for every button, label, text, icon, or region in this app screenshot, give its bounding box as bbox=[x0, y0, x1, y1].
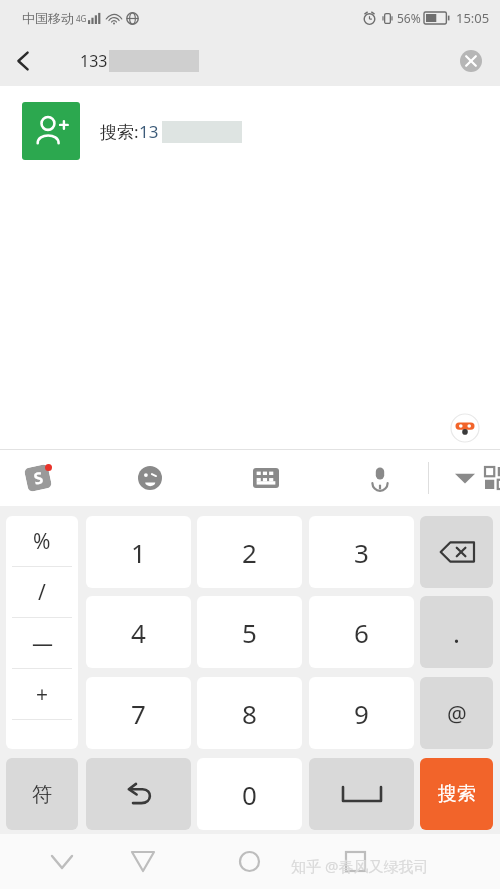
staticText: 6 bbox=[354, 615, 369, 650]
button[interactable]: . bbox=[420, 596, 493, 668]
staticText: 8 bbox=[242, 696, 257, 731]
button[interactable]: 7 bbox=[86, 677, 191, 749]
button[interactable]: Sogou input bbox=[16, 456, 60, 500]
button[interactable]: 符 bbox=[6, 758, 78, 830]
staticText: S bbox=[32, 466, 45, 490]
button[interactable]: + bbox=[6, 669, 78, 719]
staticText: — bbox=[32, 629, 53, 658]
button[interactable]: 2 bbox=[197, 516, 302, 588]
button[interactable]: Hide keyboard bbox=[443, 450, 487, 506]
staticText: 15:05 bbox=[456, 9, 490, 27]
staticText: 133 bbox=[80, 50, 108, 72]
staticText: 中国移动 bbox=[22, 10, 74, 26]
button[interactable]: 3 bbox=[309, 516, 414, 588]
button[interactable]: 6 bbox=[309, 596, 414, 668]
staticText: 9 bbox=[354, 696, 369, 731]
button[interactable]: Keyboard bbox=[244, 456, 288, 500]
staticText: 56% bbox=[397, 10, 421, 26]
staticText: 符 bbox=[32, 782, 52, 807]
button[interactable]: 1 bbox=[86, 516, 191, 588]
staticText: 5 bbox=[242, 615, 257, 650]
staticText: @ bbox=[447, 698, 467, 728]
button[interactable]: 5 bbox=[197, 596, 302, 668]
button[interactable]: Voice input bbox=[358, 456, 402, 500]
button[interactable]: 搜索: bbox=[0, 86, 500, 176]
button[interactable]: Emoji bbox=[128, 456, 172, 500]
button[interactable]: 4 bbox=[86, 596, 191, 668]
button[interactable]: Apps bbox=[474, 456, 500, 500]
staticText: 搜索: bbox=[100, 120, 139, 143]
button[interactable]: 0 bbox=[197, 758, 302, 830]
button[interactable]: Hide keyboard bbox=[40, 834, 84, 889]
staticText: 1 bbox=[131, 535, 146, 570]
button[interactable]: 9 bbox=[309, 677, 414, 749]
staticText: 2 bbox=[242, 535, 257, 570]
button[interactable]: Clear bbox=[454, 44, 488, 78]
staticText: 7 bbox=[131, 696, 146, 731]
button[interactable]: / bbox=[6, 567, 78, 617]
staticText: 3 bbox=[354, 535, 369, 570]
button[interactable]: Back bbox=[0, 37, 48, 85]
staticText: % bbox=[33, 527, 51, 556]
button[interactable]: @ bbox=[420, 677, 493, 749]
staticText: + bbox=[36, 680, 49, 709]
button[interactable]: Home bbox=[227, 834, 271, 889]
button[interactable]: Back bbox=[121, 834, 165, 889]
button[interactable]: Mascot bbox=[450, 413, 480, 443]
button[interactable]: % bbox=[6, 516, 78, 566]
staticText: 知乎 @春风又绿我司 bbox=[291, 856, 429, 876]
staticText: 搜索 bbox=[438, 782, 476, 806]
staticText: 13 bbox=[139, 120, 159, 143]
button[interactable] bbox=[309, 758, 414, 830]
staticText: . bbox=[453, 615, 460, 650]
staticText: 4 bbox=[131, 615, 146, 650]
staticText: 0 bbox=[242, 777, 257, 812]
button[interactable]: Backspace bbox=[420, 516, 493, 588]
staticText: / bbox=[38, 578, 46, 607]
button[interactable] bbox=[86, 758, 191, 830]
button[interactable]: 搜索 bbox=[420, 758, 493, 830]
button[interactable]: Recents bbox=[333, 834, 377, 889]
button[interactable]: 8 bbox=[197, 677, 302, 749]
staticText: 4G bbox=[76, 13, 87, 24]
button[interactable]: — bbox=[6, 618, 78, 668]
